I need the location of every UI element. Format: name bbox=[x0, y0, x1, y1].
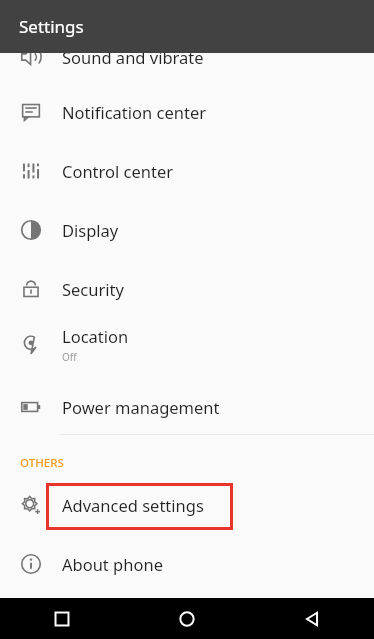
staticText: Location bbox=[62, 325, 129, 347]
staticText: Notification center bbox=[62, 101, 207, 123]
button[interactable]: Location bbox=[0, 316, 374, 373]
staticText: Control center bbox=[62, 160, 174, 182]
staticText: About phone bbox=[62, 553, 163, 575]
staticText: Settings bbox=[19, 15, 84, 38]
button[interactable]: Home bbox=[124, 598, 249, 639]
staticText: Security bbox=[62, 278, 124, 300]
button[interactable]: Security bbox=[0, 261, 374, 316]
button[interactable]: About phone bbox=[0, 536, 374, 591]
button[interactable]: Notification center bbox=[0, 84, 374, 139]
button[interactable]: Control center bbox=[0, 143, 374, 198]
staticText: Advanced settings bbox=[62, 494, 204, 516]
staticText: OTHERS bbox=[20, 455, 64, 471]
staticText: Sound and vibrate bbox=[62, 46, 204, 68]
staticText: Display bbox=[62, 219, 119, 241]
staticText: Off bbox=[62, 350, 77, 364]
button[interactable]: Sound and vibrate bbox=[0, 29, 374, 84]
button[interactable]: Power management bbox=[0, 379, 374, 434]
button[interactable]: Recent apps bbox=[0, 598, 124, 639]
staticText: Power management bbox=[62, 396, 220, 418]
button[interactable]: Back bbox=[249, 598, 374, 639]
button[interactable]: Display bbox=[0, 202, 374, 257]
button[interactable]: Advanced settings bbox=[0, 477, 374, 532]
